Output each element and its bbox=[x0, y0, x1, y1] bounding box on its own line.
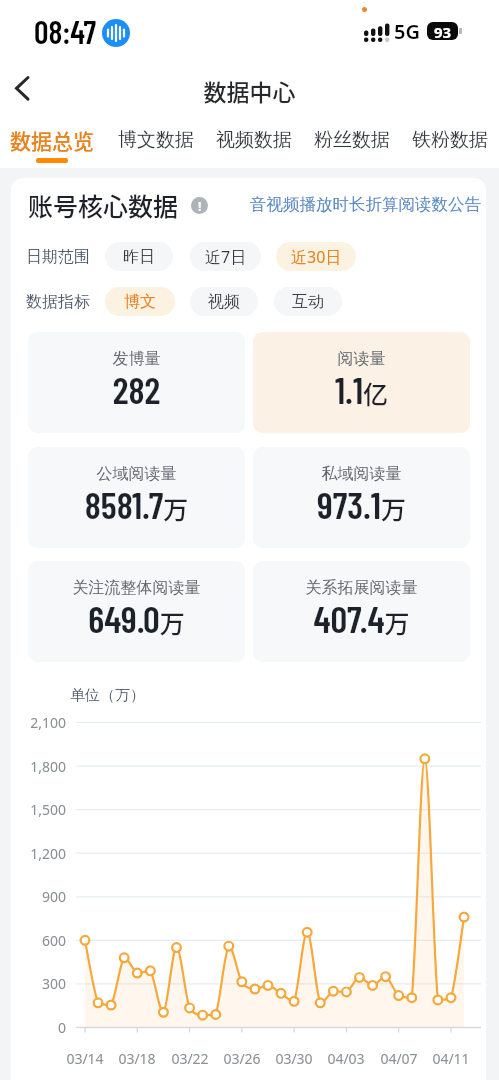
staticText: 03/22 bbox=[160, 1049, 220, 1068]
button[interactable] bbox=[8, 72, 38, 104]
button[interactable]: 视频数据 bbox=[216, 128, 292, 152]
button[interactable]: 关注流整体阅读量 bbox=[28, 561, 245, 662]
staticText: 博文 bbox=[124, 292, 156, 312]
staticText: 公域阅读量 bbox=[28, 464, 245, 484]
button[interactable]: 博文数据 bbox=[118, 128, 194, 152]
staticText: 1,500 bbox=[0, 800, 66, 819]
staticText: 600 bbox=[0, 931, 66, 950]
staticText: 近30日 bbox=[291, 246, 342, 268]
staticText: 日期范围 bbox=[26, 247, 90, 267]
staticText: 04/11 bbox=[421, 1049, 481, 1068]
button[interactable]: 关系拓展阅读量 bbox=[253, 561, 470, 662]
staticText: 关注流整体阅读量 bbox=[28, 578, 245, 598]
staticText: 0 bbox=[0, 1018, 66, 1037]
button[interactable]: 铁粉数据 bbox=[412, 128, 488, 152]
staticText: 08:47 bbox=[34, 12, 96, 50]
staticText: 2,100 bbox=[0, 713, 66, 732]
staticText: 数据中心 bbox=[0, 74, 499, 107]
button[interactable]: 私域阅读量 bbox=[253, 447, 470, 548]
button[interactable]: 公域阅读量 bbox=[28, 447, 245, 548]
staticText: 04/03 bbox=[316, 1049, 376, 1068]
staticText: 03/26 bbox=[212, 1049, 272, 1068]
staticText: 93 bbox=[434, 22, 452, 40]
staticText: 1,200 bbox=[0, 844, 66, 863]
staticText: 03/18 bbox=[107, 1049, 167, 1068]
staticText: 03/30 bbox=[264, 1049, 324, 1068]
staticText: 单位（万） bbox=[70, 686, 145, 705]
staticText: ! bbox=[198, 198, 202, 214]
button[interactable]: 粉丝数据 bbox=[314, 128, 390, 152]
staticText: 视频 bbox=[208, 292, 240, 312]
staticText: 数据指标 bbox=[26, 292, 90, 312]
button[interactable]: 音视频播放时长折算阅读数公告 bbox=[0, 194, 481, 215]
staticText: 互动 bbox=[292, 292, 324, 312]
staticText: 1.1亿 bbox=[253, 367, 470, 411]
staticText: 900 bbox=[0, 887, 66, 906]
button[interactable]: 近7日 bbox=[190, 242, 261, 271]
staticText: 近7日 bbox=[205, 246, 247, 268]
staticText: 282 bbox=[28, 367, 245, 411]
staticText: 1,800 bbox=[0, 757, 66, 776]
staticText: 973.1万 bbox=[253, 482, 470, 526]
staticText: 账号核心数据 bbox=[28, 187, 179, 223]
button[interactable]: 数据总览 bbox=[10, 125, 94, 155]
staticText: 关系拓展阅读量 bbox=[253, 578, 470, 598]
staticText: 发博量 bbox=[28, 349, 245, 369]
button[interactable]: 阅读量 bbox=[253, 332, 470, 433]
staticText: 300 bbox=[0, 974, 66, 993]
staticText: 649.0万 bbox=[28, 596, 245, 640]
button[interactable]: 发博量 bbox=[28, 332, 245, 433]
staticText: 03/14 bbox=[55, 1049, 115, 1068]
button[interactable]: 昨日 bbox=[105, 242, 173, 271]
button[interactable]: 近30日 bbox=[276, 242, 356, 271]
staticText: 昨日 bbox=[123, 247, 155, 267]
staticText: 407.4万 bbox=[253, 596, 470, 640]
staticText: 04/07 bbox=[369, 1049, 429, 1068]
button[interactable]: 互动 bbox=[274, 287, 342, 316]
staticText: 私域阅读量 bbox=[253, 464, 470, 484]
staticText: 5G bbox=[394, 18, 420, 45]
staticText: 8581.7万 bbox=[28, 482, 245, 526]
button[interactable]: 视频 bbox=[190, 287, 258, 316]
staticText: 阅读量 bbox=[253, 349, 470, 369]
button[interactable]: 博文 bbox=[105, 287, 175, 316]
